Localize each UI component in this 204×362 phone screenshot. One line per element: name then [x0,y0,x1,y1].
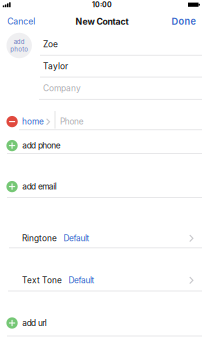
staticText: Taylor [43,61,68,71]
button[interactable]: Cancel [7,14,35,28]
button[interactable]: Phone [0,113,204,131]
staticText: Phone [60,117,84,127]
button[interactable]: Ringtone [0,229,204,247]
staticText: url [38,318,47,328]
staticText: 10:00 [92,1,112,9]
staticText: Done [172,16,196,27]
button[interactable]: Zoe [0,34,204,54]
button[interactable]: add [0,179,204,195]
button[interactable]: home [22,113,62,131]
staticText: email [38,182,57,192]
staticText: add [22,318,36,328]
staticText: home [22,117,44,127]
staticText: photo [10,45,28,53]
staticText: Cancel [7,16,35,27]
staticText: Ringtone [22,233,57,243]
staticText: New Contact [75,16,128,27]
button[interactable]: add [0,315,204,331]
button[interactable]: add [6,33,32,58]
staticText: add [22,141,36,151]
staticText: Text Tone [22,275,62,285]
button[interactable]: Text Tone [0,271,204,289]
button[interactable]: Delete phone [6,116,18,127]
staticText: Default [63,233,89,243]
button[interactable]: Taylor [0,56,204,76]
staticText: add [14,38,25,45]
button[interactable]: Done [172,14,196,28]
button[interactable]: add [0,138,204,154]
button[interactable]: Company [0,78,204,98]
staticText: Zoe [43,39,58,49]
staticText: Company [43,83,81,93]
staticText: add [22,182,36,192]
staticText: Default [68,275,94,285]
staticText: phone [38,141,61,151]
